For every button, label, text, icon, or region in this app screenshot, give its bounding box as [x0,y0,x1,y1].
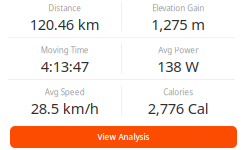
staticText: 1,275 m [151,15,205,34]
staticText: Avg Speed [45,87,85,97]
staticText: View Analysis [97,132,149,142]
button[interactable]: View Analysis [10,126,237,148]
staticText: Distance [48,3,81,13]
staticText: Moving Time [41,45,89,55]
staticText: 28.5 km/h [31,99,99,118]
staticText: 138 W [157,57,199,76]
staticText: 2,776 Cal [148,99,209,118]
staticText: 4:13:47 [41,57,89,76]
staticText: 120.46 km [30,15,100,34]
staticText: Elevation Gain [152,3,204,13]
staticText: Avg Power [158,45,198,55]
staticText: Calories [163,87,193,97]
